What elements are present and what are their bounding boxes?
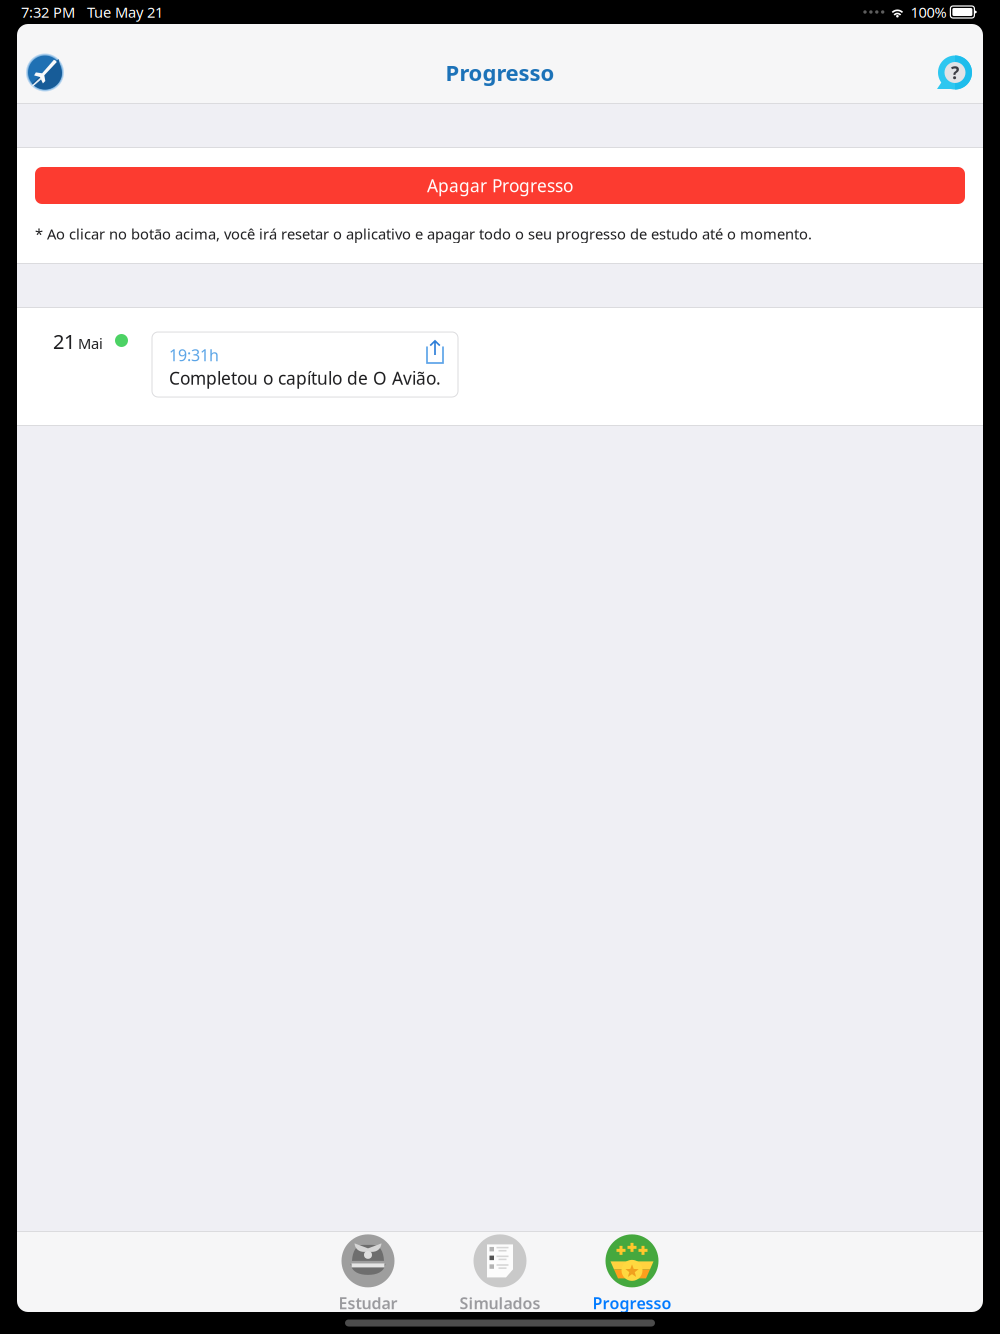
staticText: 21: [53, 328, 75, 355]
staticText: Simulados: [459, 1292, 540, 1314]
staticText: Progresso: [445, 57, 554, 87]
staticText: Mai: [78, 334, 103, 353]
button[interactable]: Help: [936, 55, 974, 89]
staticText: ?: [951, 61, 959, 84]
button[interactable]: Apagar Progresso: [35, 167, 965, 204]
staticText: Completou o capítulo de O Avião.: [169, 367, 441, 390]
staticText: Apagar Progresso: [427, 174, 573, 197]
button[interactable]: Simulados: [434, 1232, 566, 1312]
staticText: 7:32 PM: [21, 2, 75, 22]
button[interactable]: Share: [426, 340, 444, 364]
button[interactable]: App icon: [25, 52, 65, 92]
staticText: 100%: [910, 2, 946, 22]
staticText: * Ao clicar no botão acima, você irá res…: [35, 224, 812, 243]
button[interactable]: Estudar: [302, 1232, 434, 1312]
button[interactable]: Progresso: [566, 1232, 698, 1312]
staticText: Estudar: [338, 1292, 397, 1314]
staticText: Tue May 21: [75, 2, 163, 22]
staticText: 19:31h: [169, 344, 219, 366]
staticText: Progresso: [592, 1292, 671, 1314]
